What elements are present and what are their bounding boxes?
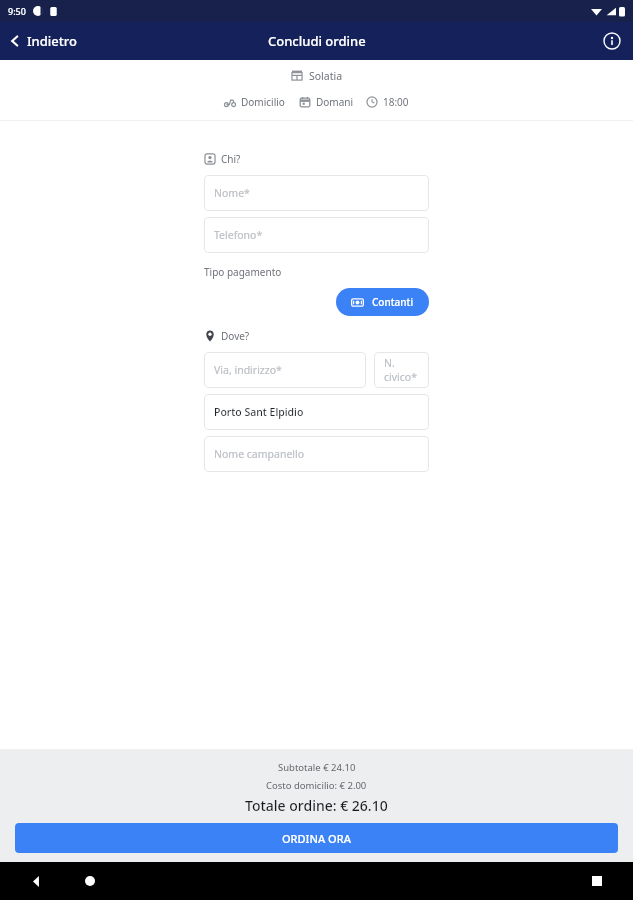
staticText: 18:00 — [383, 95, 409, 109]
button[interactable]: Home — [78, 869, 102, 893]
staticText: Porto Sant Elpidio — [214, 405, 304, 419]
staticText: Via, indirizzo* — [214, 363, 282, 377]
button[interactable]: Informazioni — [600, 29, 624, 53]
staticText: Contanti — [372, 295, 414, 309]
button[interactable]: Telefono* — [204, 217, 429, 253]
staticText: Domani — [316, 95, 354, 109]
button[interactable]: Indietro — [0, 27, 87, 55]
staticText: N. civico* — [384, 356, 419, 384]
staticText: Chi? — [221, 152, 241, 166]
button[interactable]: Porto Sant Elpidio — [204, 394, 429, 430]
button[interactable]: Indietro — [24, 869, 48, 893]
staticText: Domicilio — [241, 95, 285, 109]
staticText: Solatia — [309, 69, 343, 83]
staticText: 9:50 — [8, 5, 26, 17]
button[interactable]: ORDINA ORA — [15, 823, 618, 853]
staticText: Nome campanello — [214, 447, 305, 461]
staticText: Subtotale € 24.10 — [278, 761, 356, 774]
button[interactable]: Recenti — [585, 869, 609, 893]
button[interactable]: Contanti — [336, 288, 429, 316]
button[interactable]: Nome campanello — [204, 436, 429, 472]
staticText: Costo domicilio: € 2.00 — [266, 779, 367, 792]
staticText: Telefono* — [214, 228, 263, 242]
button[interactable]: Nome* — [204, 175, 429, 211]
staticText: Concludi ordine — [268, 32, 366, 50]
staticText: Totale ordine: € 26.10 — [245, 796, 388, 815]
staticText: Indietro — [27, 32, 77, 50]
staticText: ORDINA ORA — [282, 831, 351, 846]
staticText: Dove? — [221, 329, 250, 343]
staticText: Tipo pagamento — [204, 265, 282, 279]
staticText: Nome* — [214, 186, 250, 200]
button[interactable]: N. civico* — [374, 352, 429, 388]
button[interactable]: Via, indirizzo* — [204, 352, 366, 388]
